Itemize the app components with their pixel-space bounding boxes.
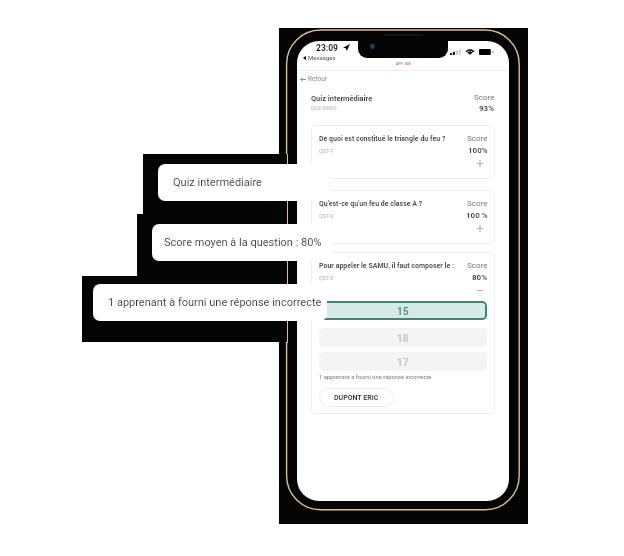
staticText: QUZ-00001 [311,105,338,111]
other: Wi-Fi [465,48,475,55]
button[interactable]: 17 [319,352,487,371]
staticText: Qu'est-ce qu'un feu de classe A ? [319,200,423,208]
button[interactable]: Qu'est-ce qu'un feu de classe A ? [311,190,495,244]
button[interactable]: De quoi est constitué le triangle du feu… [311,125,495,179]
staticText: 15 [397,306,409,318]
staticText: Quiz intermédiaire [173,176,262,189]
other: Location services active [343,44,350,51]
staticText: 23:09 [316,43,338,53]
staticText: Score [467,199,488,208]
staticText: 93% [479,104,495,113]
staticText: Retour [308,75,328,83]
other: Battery [479,49,494,55]
staticText: 100 % [466,211,488,220]
staticText: 1 apprenant a fourni une réponse incorre… [319,374,432,381]
staticText: QST-1 [319,148,334,154]
staticText: Quiz intermédiaire [311,94,373,103]
button[interactable]: 18 [319,328,487,347]
staticText: DUPONT ERIC [334,394,379,402]
staticText: Pour appeler le SAMU, il faut composer l… [319,262,454,270]
other: Cellular signal [450,49,461,55]
staticText: QST-3 [319,275,334,281]
staticText: 80% [472,273,488,282]
staticText: Score moyen à la question : 80% [164,236,322,249]
staticText: 18 [397,333,409,345]
staticText: De quoi est constitué le triangle du feu… [319,135,446,143]
other: Expand question [477,160,483,167]
other: Collapse question [477,287,483,294]
button[interactable]: Retour [297,71,509,87]
staticText: Score [474,93,495,102]
staticText: Messages [308,54,336,61]
staticText: 100% [468,146,488,155]
button[interactable]: Pour appeler le SAMU, il faut composer l… [311,252,495,414]
staticText: 1 apprenant à fourni une réponse incorre… [108,296,322,309]
button[interactable]: 15 [319,301,487,320]
button[interactable]: Quiz intermédiaire [158,164,331,201]
other: Expand question [477,225,483,232]
staticText: 17 [397,357,409,369]
staticText: APP-JOB [396,62,411,66]
staticText: Score [467,261,488,270]
staticText: Score [467,134,488,143]
button[interactable]: DUPONT ERIC [319,388,394,407]
button[interactable]: Score moyen à la question : 80% [152,224,332,261]
button[interactable]: 1 apprenant à fourni une réponse incorre… [93,284,327,321]
staticText: QST-2 [319,213,334,219]
